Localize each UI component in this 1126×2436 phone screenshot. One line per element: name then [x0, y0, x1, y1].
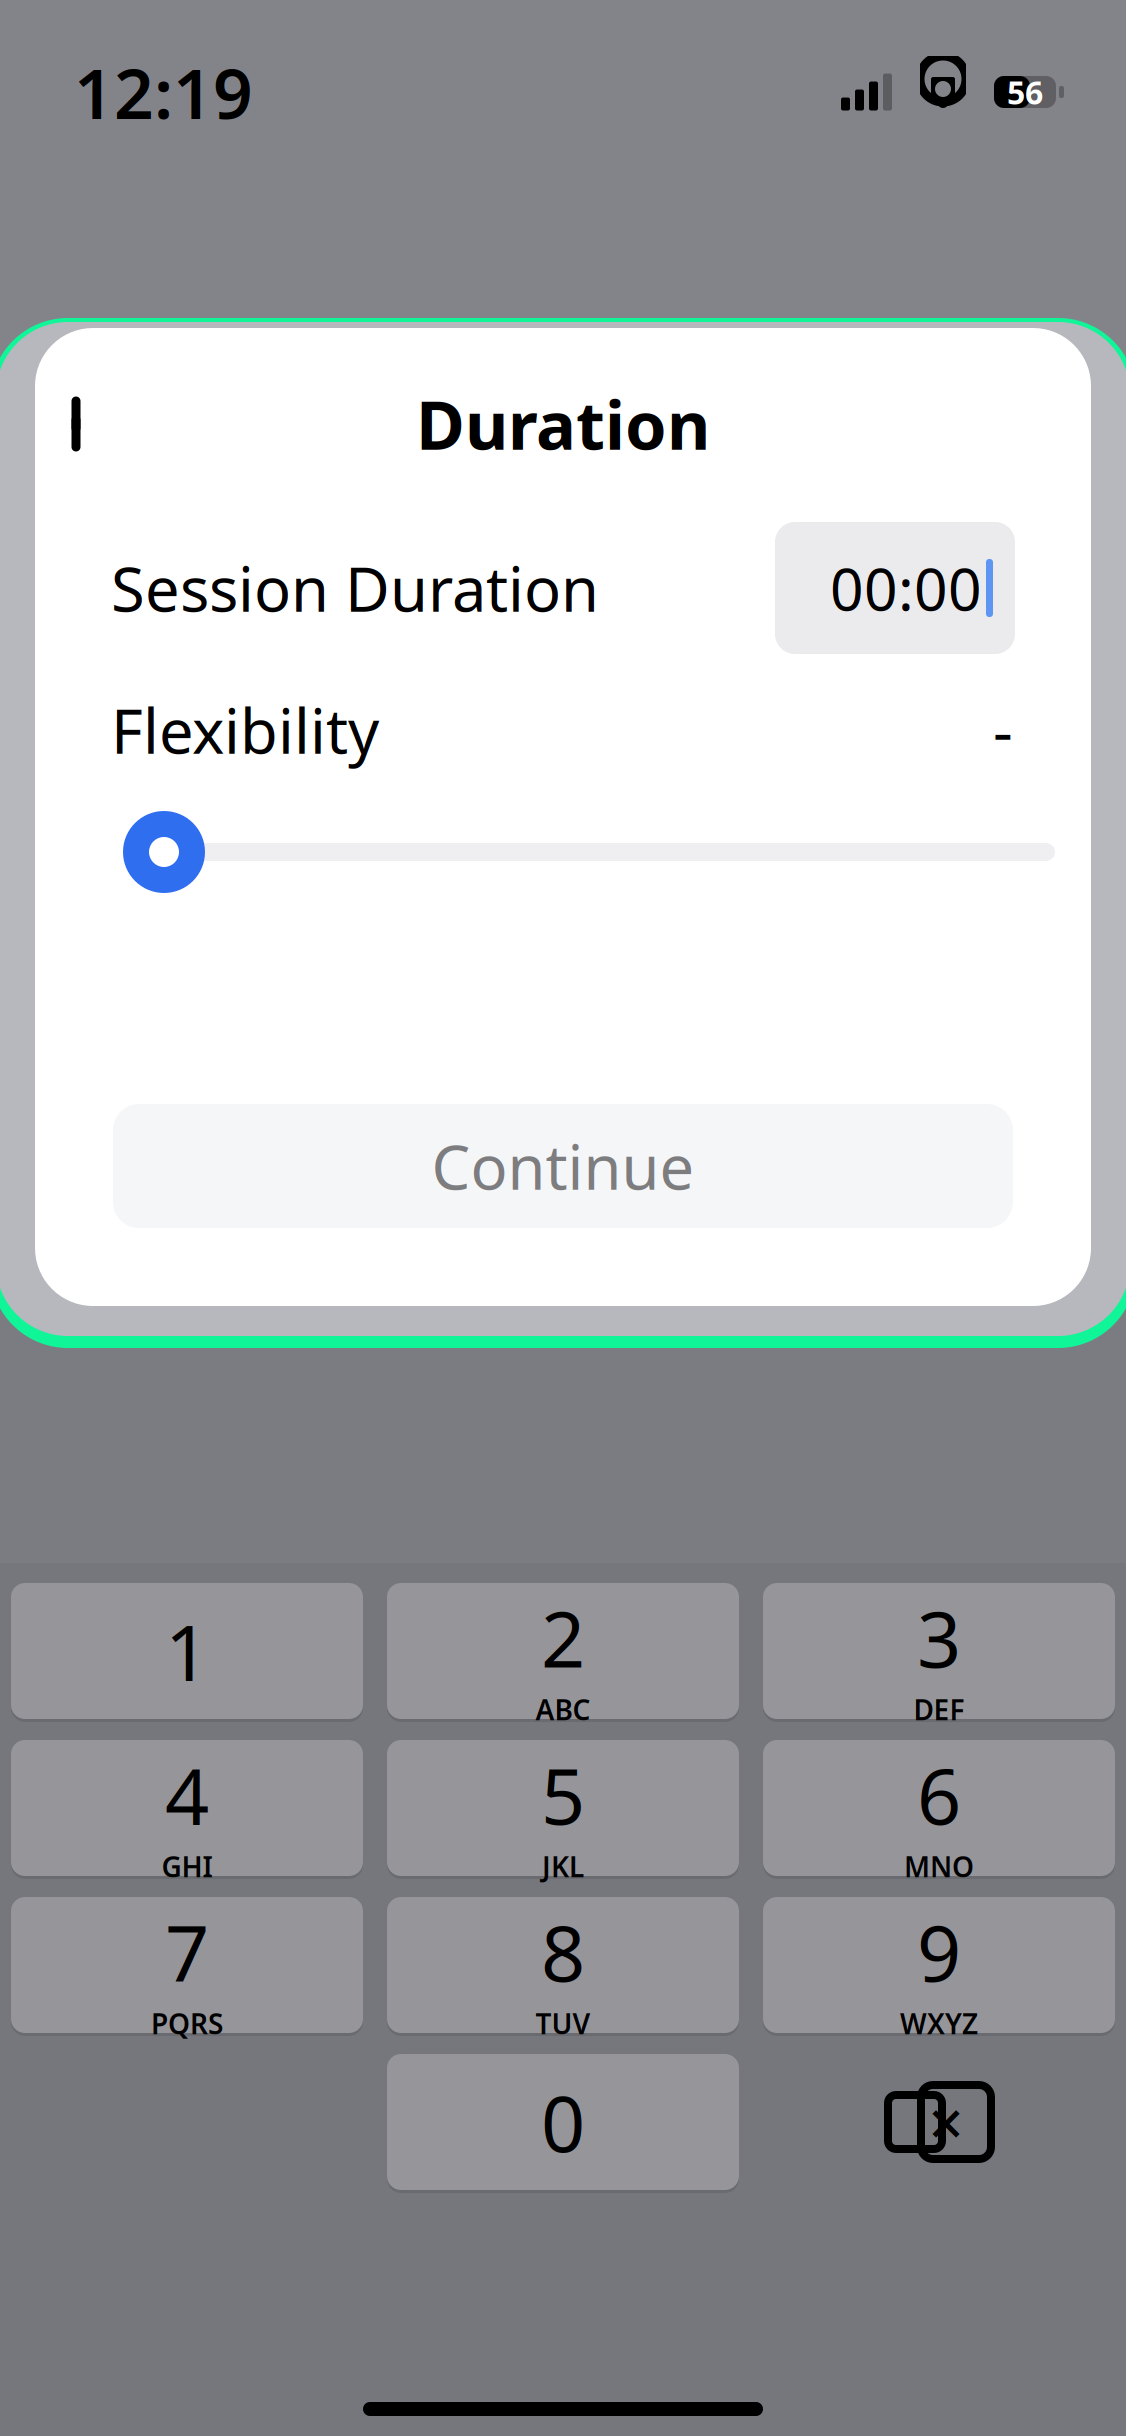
- button[interactable]: Flexibility slider: [109, 797, 219, 907]
- staticText: JKL: [542, 1848, 584, 1885]
- staticText: 7: [165, 1900, 209, 2003]
- staticText: WXYZ: [900, 2005, 978, 2042]
- staticText: Flexibility: [111, 689, 379, 771]
- staticText: Continue: [431, 1125, 694, 1207]
- staticText: 6: [917, 1743, 961, 1846]
- staticText: Session Duration: [111, 547, 599, 629]
- button[interactable]: 1: [11, 1580, 363, 1722]
- button[interactable]: 0: [387, 2051, 739, 2193]
- staticText: 00:00: [830, 549, 982, 627]
- staticText: 9: [917, 1900, 961, 2003]
- button[interactable]: Continue: [113, 1104, 1013, 1228]
- button[interactable]: 6: [763, 1737, 1115, 1879]
- staticText: 8: [541, 1900, 585, 2003]
- staticText: ×: [928, 2081, 963, 2163]
- staticText: Duration: [416, 380, 710, 468]
- staticText: DEF: [913, 1691, 964, 1728]
- staticText: 56: [1007, 71, 1043, 113]
- button[interactable]: 2: [387, 1580, 739, 1722]
- staticText: 5: [541, 1743, 585, 1846]
- staticText: 0: [541, 2071, 585, 2173]
- staticText: ABC: [535, 1691, 590, 1728]
- button[interactable]: Back: [35, 378, 127, 470]
- staticText: -: [993, 689, 1013, 771]
- staticText: PQRS: [151, 2005, 223, 2042]
- staticText: 4: [165, 1743, 209, 1846]
- staticText: MNO: [904, 1848, 974, 1885]
- button[interactable]: 4: [11, 1737, 363, 1879]
- staticText: 12:19: [74, 46, 253, 138]
- staticText: TUV: [535, 2005, 590, 2042]
- button[interactable]: 8: [387, 1894, 739, 2036]
- button[interactable]: 00:00: [775, 522, 1015, 654]
- button[interactable]: 3: [763, 1580, 1115, 1722]
- staticText: GHI: [161, 1848, 212, 1885]
- staticText: 3: [917, 1586, 961, 1689]
- button[interactable]: 7: [11, 1894, 363, 2036]
- staticText: 1: [165, 1600, 209, 1702]
- button[interactable]: Delete: [763, 2054, 1115, 2190]
- button[interactable]: 9: [763, 1894, 1115, 2036]
- button[interactable]: 5: [387, 1737, 739, 1879]
- staticText: 2: [541, 1586, 585, 1689]
